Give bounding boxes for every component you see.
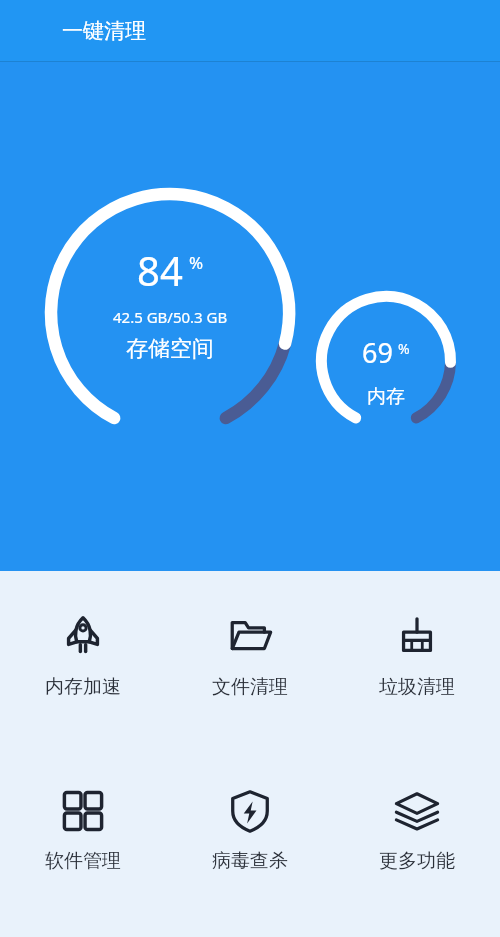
staticText: 一键清理 — [62, 18, 146, 44]
staticText: 内存 — [367, 385, 405, 409]
staticText: 存储空间 — [126, 335, 214, 363]
button[interactable]: 病毒查杀 — [166, 783, 333, 877]
button[interactable]: 文件清理 — [166, 609, 333, 703]
button[interactable]: 垃圾清理 — [333, 609, 500, 703]
button[interactable]: 软件管理 — [0, 783, 166, 877]
button[interactable]: 更多功能 — [333, 783, 500, 877]
staticText: 42.5 GB/50.3 GB — [113, 307, 228, 327]
staticText: 垃圾清理 — [379, 675, 455, 699]
staticText: 内存加速 — [45, 675, 121, 699]
staticText: 软件管理 — [45, 849, 121, 873]
staticText: 病毒查杀 — [212, 849, 288, 873]
staticText: 69 — [362, 334, 393, 371]
staticText: 文件清理 — [212, 675, 288, 699]
button[interactable]: 内存加速 — [0, 609, 166, 703]
staticText: % — [398, 339, 410, 358]
staticText: 84 — [137, 243, 183, 297]
staticText: % — [189, 251, 204, 274]
staticText: 更多功能 — [379, 849, 455, 873]
